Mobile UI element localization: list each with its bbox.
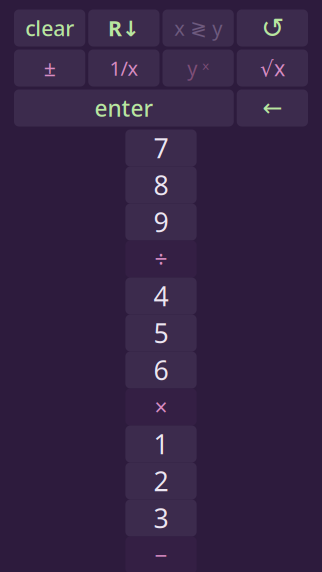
staticText: x ≷ y	[174, 15, 222, 41]
button[interactable]: 1/x	[88, 49, 159, 86]
button[interactable]: Undo	[237, 9, 308, 46]
staticText: 4	[153, 278, 168, 314]
staticText: clear	[25, 14, 74, 42]
button[interactable]: 5	[125, 314, 197, 351]
staticText: R↓	[108, 14, 140, 42]
staticText: 9	[153, 204, 168, 240]
button[interactable]: ×	[125, 388, 197, 425]
button[interactable]: 2	[125, 462, 197, 499]
staticText: 6	[153, 352, 168, 388]
button[interactable]: 6	[125, 351, 197, 388]
button[interactable]: 3	[125, 499, 197, 536]
button[interactable]: Backspace	[237, 89, 308, 126]
button[interactable]: ±	[14, 49, 85, 86]
button[interactable]: R↓	[88, 9, 159, 46]
staticText: ↺	[261, 12, 284, 44]
staticText: 8	[153, 167, 168, 203]
button[interactable]: 9	[125, 203, 197, 240]
staticText: ←	[262, 94, 282, 122]
button[interactable]: 1	[125, 425, 197, 462]
staticText: enter	[94, 93, 153, 123]
button[interactable]: 4	[125, 277, 197, 314]
button[interactable]: √x	[237, 49, 308, 86]
staticText: 7	[153, 130, 168, 166]
staticText: ×	[154, 392, 167, 422]
button[interactable]: 8	[125, 166, 197, 203]
staticText: 2	[153, 463, 168, 499]
staticText: −	[154, 540, 167, 570]
staticText: 5	[153, 315, 168, 351]
staticText: y ˣ	[187, 55, 209, 81]
button[interactable]: x ≷ y	[162, 9, 234, 46]
button[interactable]: 7	[125, 129, 197, 166]
button[interactable]: y ˣ	[162, 49, 234, 86]
button[interactable]: −	[125, 536, 197, 572]
staticText: ÷	[154, 244, 167, 274]
staticText: ±	[44, 54, 56, 82]
staticText: √x	[260, 54, 285, 82]
staticText: 1,7777374736752224	[42, 0, 306, 15]
button[interactable]: clear	[14, 9, 85, 46]
button[interactable]: enter	[14, 89, 234, 126]
staticText: 3	[153, 500, 168, 536]
staticText: 1	[153, 426, 168, 462]
button[interactable]: ÷	[125, 240, 197, 277]
staticText: 1/x	[109, 55, 138, 81]
